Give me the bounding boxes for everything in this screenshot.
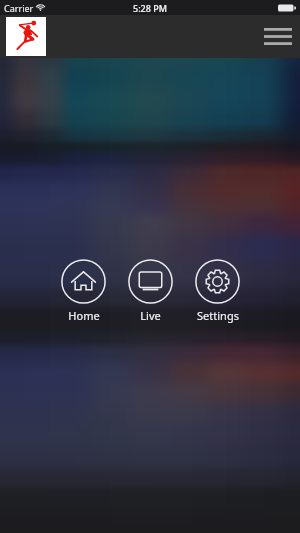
staticText: Settings bbox=[197, 308, 239, 323]
staticText: 5:28 PM bbox=[133, 2, 167, 14]
button[interactable]: Settings bbox=[195, 259, 240, 323]
staticText: Live bbox=[140, 308, 161, 323]
staticText: Home bbox=[68, 308, 100, 323]
button[interactable]: Live bbox=[128, 259, 173, 323]
staticText: Carrier bbox=[4, 2, 34, 14]
button[interactable]: Menu bbox=[256, 15, 300, 58]
button[interactable]: Home bbox=[61, 259, 106, 323]
button[interactable]: Home logo bbox=[6, 17, 46, 56]
